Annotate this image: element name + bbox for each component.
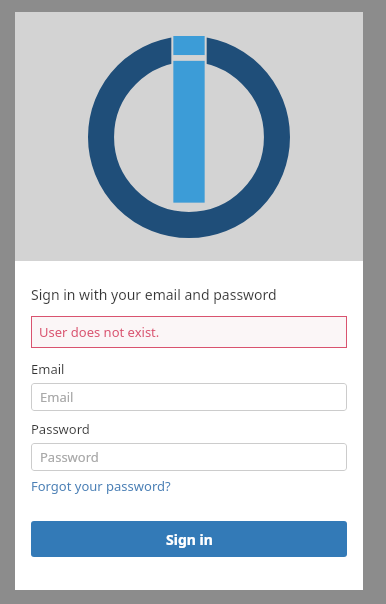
staticText: Email [31, 360, 65, 378]
button[interactable]: Forgot your password? [31, 477, 171, 495]
button[interactable]: Email [31, 383, 347, 411]
button[interactable]: Password [31, 443, 347, 471]
staticText: Password [31, 420, 90, 438]
button[interactable]: Sign in [31, 521, 347, 557]
staticText: Forgot your password? [31, 477, 171, 495]
staticText: Password [40, 448, 99, 466]
other: App logo [88, 36, 290, 238]
staticText: User does not exist. [39, 323, 160, 341]
staticText: Sign in [166, 530, 213, 549]
staticText: Sign in with your email and password [31, 285, 277, 304]
staticText: Email [40, 388, 74, 406]
